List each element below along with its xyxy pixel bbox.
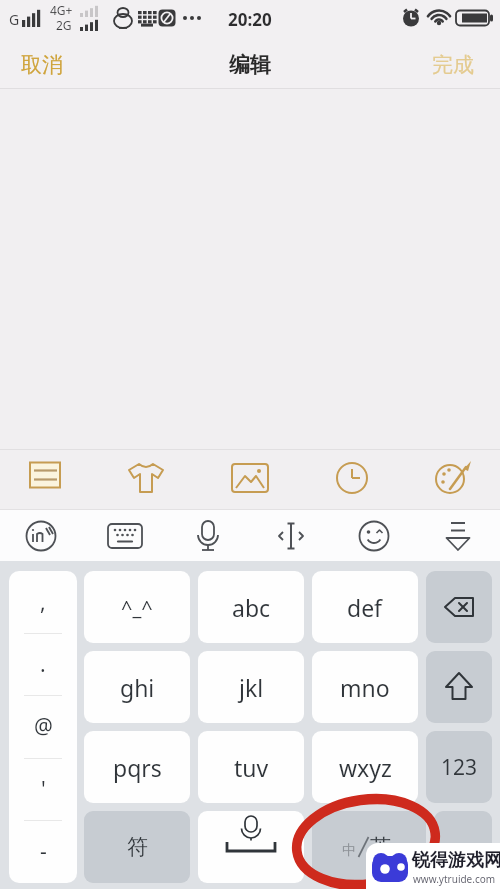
button[interactable]: ^_^ [84, 571, 190, 643]
button[interactable]: abc [198, 571, 304, 643]
staticText: 锐得游戏网 [412, 849, 500, 872]
button[interactable] [438, 516, 478, 556]
staticText: jkl [239, 672, 264, 703]
button[interactable]: , [9, 571, 77, 633]
button[interactable] [434, 811, 492, 883]
staticText: ^_^ [121, 594, 153, 621]
staticText: 完成 [432, 52, 474, 78]
staticText: pqrs [113, 752, 162, 783]
button[interactable] [432, 457, 472, 497]
staticText: ghi [120, 672, 155, 703]
button[interactable] [126, 458, 166, 498]
staticText: - [40, 837, 47, 866]
staticText: mno [340, 672, 390, 703]
button[interactable]: tuv [198, 731, 304, 803]
button[interactable]: ' [9, 758, 77, 820]
button[interactable]: 完成 [425, 51, 481, 79]
button[interactable] [426, 571, 492, 643]
staticText: , [40, 588, 46, 617]
staticText: 2G [56, 17, 72, 33]
staticText: G [9, 10, 20, 29]
staticText: . [40, 650, 46, 679]
staticText: tuv [234, 752, 269, 783]
staticText: 4G+ [50, 2, 73, 18]
button[interactable] [21, 516, 61, 556]
staticText: 20:20 [228, 8, 272, 31]
button[interactable] [25, 455, 65, 495]
button[interactable]: ghi [84, 651, 190, 723]
staticText: 中 [342, 842, 356, 860]
button[interactable] [354, 516, 394, 556]
button[interactable] [230, 458, 270, 498]
button[interactable] [271, 516, 311, 556]
staticText: @ [34, 712, 53, 741]
button[interactable]: def [312, 571, 418, 643]
button[interactable]: 123 [426, 731, 492, 803]
staticText: www.ytruide.com [413, 872, 496, 886]
button[interactable]: mno [312, 651, 418, 723]
staticText: 英 [370, 834, 391, 860]
staticText: 符 [127, 834, 148, 860]
staticText: abc [232, 592, 271, 623]
button[interactable]: 中 [312, 811, 426, 883]
button[interactable] [198, 811, 304, 883]
staticText: ' [41, 775, 46, 804]
button[interactable]: wxyz [312, 731, 418, 803]
button[interactable]: - [9, 820, 77, 882]
button[interactable]: 取消 [16, 51, 68, 79]
button[interactable] [332, 458, 372, 498]
staticText: def [347, 592, 383, 623]
button[interactable]: 符 [84, 811, 190, 883]
button[interactable]: @ [9, 695, 77, 757]
button[interactable]: jkl [198, 651, 304, 723]
button[interactable]: pqrs [84, 731, 190, 803]
button[interactable] [426, 651, 492, 723]
button[interactable] [105, 516, 145, 556]
button[interactable]: . [9, 633, 77, 695]
staticText: wxyz [339, 752, 392, 783]
button[interactable] [188, 516, 228, 556]
staticText: 取消 [21, 52, 63, 78]
staticText: 123 [441, 753, 478, 782]
staticText: 编辑 [229, 52, 271, 78]
